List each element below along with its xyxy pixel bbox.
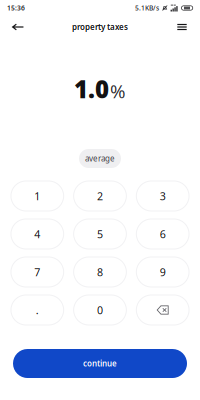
button[interactable]: 0 (74, 295, 126, 325)
staticText: 0 (97, 303, 103, 317)
button[interactable]: Delete (136, 295, 189, 325)
staticText: 4 (34, 227, 40, 241)
staticText: 7 (34, 265, 40, 279)
staticText: 9 (160, 265, 166, 279)
button[interactable]: 1 (11, 181, 64, 211)
staticText: % (110, 79, 126, 103)
staticText: property taxes (72, 22, 128, 32)
button[interactable]: 5 (74, 219, 126, 249)
staticText: 5.1KB/s (135, 4, 159, 12)
button[interactable]: Back (6, 16, 30, 38)
button[interactable]: 2 (74, 181, 126, 211)
button[interactable]: . (11, 295, 64, 325)
button[interactable]: Menu (170, 16, 194, 38)
staticText: continue (83, 358, 117, 369)
button[interactable]: continue (13, 349, 187, 378)
staticText: 2 (97, 189, 103, 203)
staticText: 3 (160, 189, 166, 203)
staticText: 1 (34, 189, 40, 203)
staticText: . (36, 303, 39, 317)
staticText: 6 (160, 227, 166, 241)
staticText: 15:36 (7, 4, 25, 12)
button[interactable]: 7 (11, 257, 64, 287)
staticText: 1.0 (74, 73, 109, 105)
staticText: average (85, 153, 115, 164)
button[interactable]: 8 (74, 257, 126, 287)
button[interactable]: 9 (136, 257, 189, 287)
button[interactable]: 4 (11, 219, 64, 249)
staticText: 8 (97, 265, 103, 279)
button[interactable]: 3 (136, 181, 189, 211)
staticText: 5 (97, 227, 103, 241)
button[interactable]: 6 (136, 219, 189, 249)
